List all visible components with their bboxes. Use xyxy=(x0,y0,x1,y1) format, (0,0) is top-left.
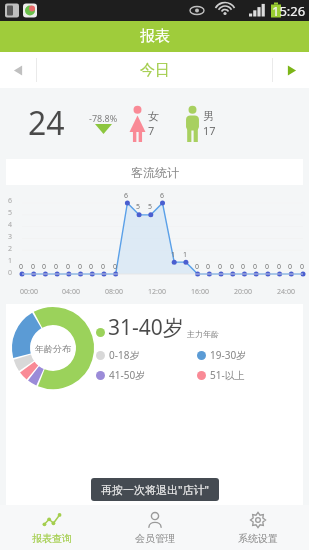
staticText: 51-以上 xyxy=(210,368,245,382)
staticText: 0 xyxy=(218,262,223,272)
staticText: 31-40岁 xyxy=(108,313,184,342)
staticText: 6 xyxy=(124,191,129,201)
staticText: 19-30岁 xyxy=(210,348,247,362)
staticText: 0 xyxy=(42,262,47,272)
staticText: 17 xyxy=(203,123,216,138)
staticText: 6 xyxy=(8,196,13,206)
staticText: 0 xyxy=(78,262,83,272)
button[interactable]: 会员管理 xyxy=(103,505,206,550)
staticText: 主力年龄 xyxy=(187,329,219,339)
staticText: 04:00 xyxy=(62,287,80,297)
staticText: 0 xyxy=(54,262,59,272)
staticText: 0 xyxy=(31,262,36,272)
staticText: 3 xyxy=(8,232,13,242)
staticText: 1 xyxy=(8,256,13,266)
staticText: 系统设置 xyxy=(238,532,278,545)
staticText: 0-18岁 xyxy=(109,348,140,362)
staticText: 0 xyxy=(195,262,200,272)
staticText: 24:00 xyxy=(277,287,295,297)
staticText: 0 xyxy=(265,262,270,272)
staticText: 0 xyxy=(288,262,293,272)
staticText: 年龄分布 xyxy=(35,343,71,354)
button[interactable]: 今日 xyxy=(37,52,272,88)
button[interactable]: 系统设置 xyxy=(206,505,309,550)
staticText: 0 xyxy=(66,262,71,272)
staticText: 0 xyxy=(300,262,305,272)
staticText: 0 xyxy=(19,262,24,272)
staticText: 男 xyxy=(203,109,214,123)
staticText: 0 xyxy=(206,262,211,272)
staticText: 15:26 xyxy=(272,2,306,20)
staticText: -78.8% xyxy=(89,112,118,124)
staticText: 0 xyxy=(253,262,258,272)
staticText: 1 xyxy=(183,250,188,260)
button[interactable]: 下一日 xyxy=(273,52,309,88)
staticText: 1 xyxy=(171,250,176,260)
staticText: 4 xyxy=(8,220,13,230)
staticText: 报表 xyxy=(140,27,170,46)
staticText: 41-50岁 xyxy=(109,368,146,382)
staticText: 2 xyxy=(8,244,13,254)
staticText: 客流统计 xyxy=(131,165,179,180)
staticText: 0 xyxy=(89,262,94,272)
staticText: 20:00 xyxy=(234,287,252,297)
staticText: 报表查询 xyxy=(32,532,72,545)
staticText: 08:00 xyxy=(105,287,123,297)
staticText: 12:00 xyxy=(148,287,166,297)
staticText: 5 xyxy=(136,202,141,212)
staticText: 0 xyxy=(241,262,246,272)
staticText: 女 xyxy=(148,109,159,123)
staticText: 7 xyxy=(148,123,155,138)
button[interactable]: 上一日 xyxy=(0,52,36,88)
staticText: 0 xyxy=(230,262,235,272)
staticText: 5 xyxy=(148,202,153,212)
staticText: 再按一次将退出"店计" xyxy=(101,482,209,497)
button[interactable]: 客流统计 xyxy=(6,159,303,185)
staticText: 16:00 xyxy=(191,287,209,297)
staticText: 00:00 xyxy=(20,287,38,297)
staticText: 24 xyxy=(28,101,65,145)
staticText: 0 xyxy=(113,262,118,272)
button[interactable]: 报表查询 xyxy=(0,505,103,550)
staticText: 5 xyxy=(8,208,13,218)
staticText: 0 xyxy=(101,262,106,272)
staticText: 今日 xyxy=(140,61,170,80)
staticText: 会员管理 xyxy=(135,532,175,545)
staticText: 0 xyxy=(277,262,282,272)
staticText: 6 xyxy=(160,191,165,201)
staticText: 0 xyxy=(8,268,13,278)
